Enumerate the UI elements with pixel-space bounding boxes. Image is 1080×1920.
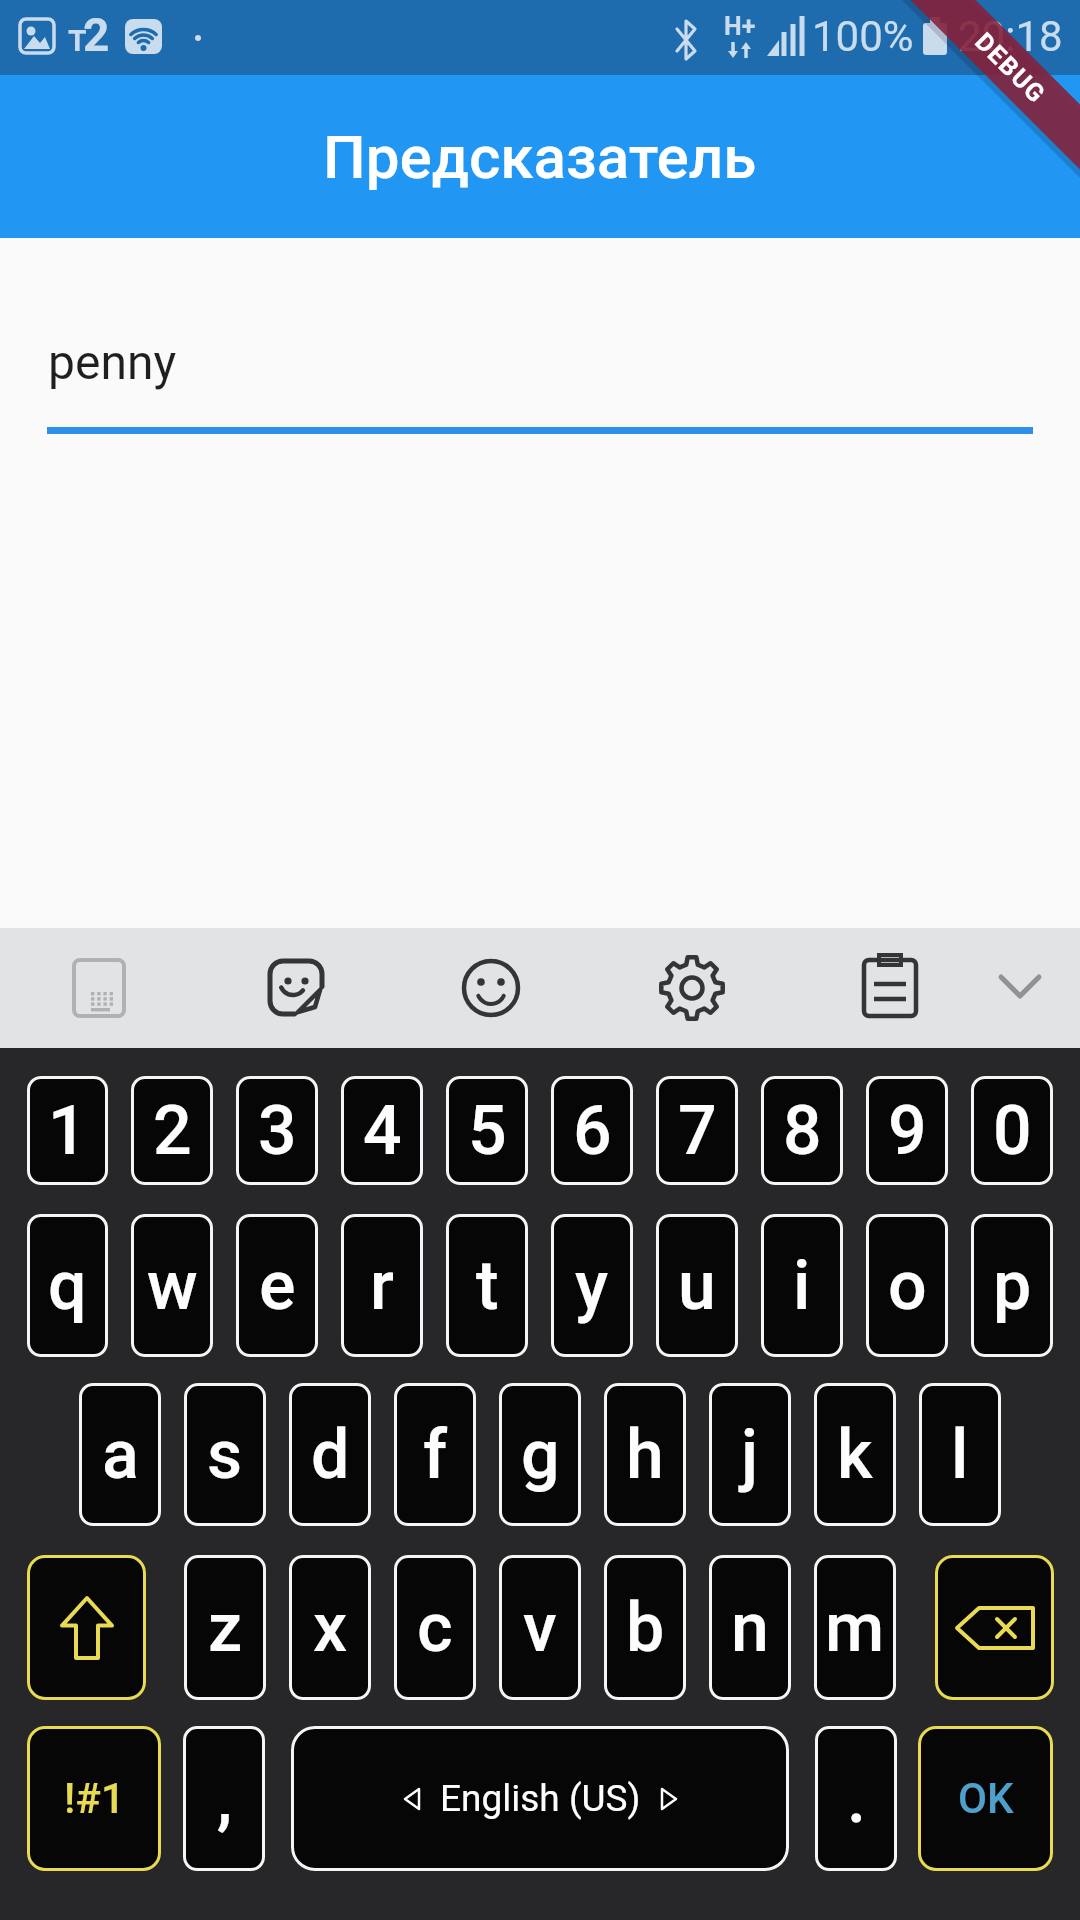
staticText: o — [888, 1246, 927, 1326]
staticText: 100% — [812, 12, 914, 61]
button[interactable]: q — [27, 1214, 108, 1357]
staticText: !#1 — [64, 1774, 125, 1823]
button[interactable]: s — [184, 1383, 266, 1526]
button[interactable]: w — [131, 1214, 213, 1357]
button[interactable]: z — [184, 1555, 266, 1700]
button[interactable]: i — [761, 1214, 843, 1357]
button[interactable]: !#1 — [27, 1726, 161, 1871]
button[interactable]: l — [919, 1383, 1001, 1526]
staticText: H+ — [724, 12, 756, 41]
staticText: 4 — [363, 1091, 402, 1171]
staticText: t — [476, 1246, 499, 1326]
staticText: e — [259, 1246, 296, 1326]
button[interactable]: 8 — [761, 1076, 843, 1185]
button[interactable]: v — [499, 1555, 581, 1700]
staticText: 2 — [153, 1091, 192, 1171]
staticText: b — [626, 1588, 665, 1668]
staticText: 2 — [83, 8, 110, 62]
staticText: c — [417, 1588, 453, 1668]
button[interactable]: , — [183, 1726, 265, 1871]
staticText: z — [208, 1588, 243, 1668]
staticText: k — [837, 1415, 873, 1495]
staticText: a — [102, 1415, 139, 1495]
staticText: j — [741, 1415, 759, 1495]
button[interactable]: a — [79, 1383, 161, 1526]
staticText: OK — [958, 1774, 1014, 1823]
button[interactable]: t — [446, 1214, 528, 1357]
staticText: . — [847, 1759, 866, 1839]
button[interactable]: h — [604, 1383, 686, 1526]
staticText: 1 — [48, 1091, 87, 1171]
staticText: penny — [48, 334, 177, 390]
staticText: 7 — [678, 1091, 717, 1171]
button[interactable]: 1 — [27, 1076, 108, 1185]
button[interactable]: 2 — [131, 1076, 213, 1185]
button[interactable]: 4 — [341, 1076, 423, 1185]
staticText: h — [626, 1415, 664, 1495]
button[interactable]: j — [709, 1383, 791, 1526]
button[interactable]: n — [709, 1555, 791, 1700]
staticText: 20:18 — [958, 12, 1063, 61]
staticText: v — [523, 1588, 557, 1668]
button[interactable]: 0 — [971, 1076, 1053, 1185]
button[interactable]: c — [394, 1555, 476, 1700]
button[interactable] — [935, 1555, 1054, 1700]
button[interactable]: 6 — [551, 1076, 633, 1185]
button[interactable]: y — [551, 1214, 633, 1357]
staticText: 6 — [573, 1091, 612, 1171]
button[interactable]: g — [499, 1383, 581, 1526]
button[interactable]: m — [814, 1555, 896, 1700]
button[interactable]: r — [341, 1214, 423, 1357]
button[interactable]: u — [656, 1214, 738, 1357]
staticText: l — [951, 1415, 969, 1495]
staticText: x — [313, 1588, 348, 1668]
button[interactable]: . — [815, 1726, 897, 1871]
button[interactable]: 7 — [656, 1076, 738, 1185]
staticText: Предсказатель — [323, 122, 757, 192]
staticText: q — [48, 1246, 87, 1326]
staticText: n — [731, 1588, 769, 1668]
button[interactable]: 9 — [866, 1076, 948, 1185]
staticText: i — [793, 1246, 811, 1326]
staticText: 0 — [993, 1091, 1032, 1171]
staticText: d — [311, 1415, 350, 1495]
staticText: 5 — [468, 1091, 507, 1171]
button[interactable]: 5 — [446, 1076, 528, 1185]
staticText: g — [521, 1415, 560, 1495]
button[interactable]: OK — [918, 1726, 1053, 1871]
button[interactable]: d — [289, 1383, 371, 1526]
staticText: u — [678, 1246, 716, 1326]
button[interactable]: f — [394, 1383, 476, 1526]
staticText: 3 — [258, 1091, 297, 1171]
staticText: 8 — [783, 1091, 822, 1171]
staticText: w — [147, 1246, 198, 1326]
staticText: T — [68, 23, 87, 58]
staticText: , — [217, 1759, 232, 1839]
button[interactable]: e — [236, 1214, 318, 1357]
button[interactable]: p — [971, 1214, 1053, 1357]
staticText: m — [825, 1588, 885, 1668]
staticText: r — [370, 1246, 394, 1326]
button[interactable]: x — [289, 1555, 371, 1700]
button[interactable] — [27, 1555, 146, 1700]
staticText: p — [993, 1246, 1032, 1326]
staticText: y — [575, 1246, 609, 1326]
staticText: s — [207, 1415, 243, 1495]
staticText: English (US) — [440, 1777, 641, 1820]
button[interactable]: k — [814, 1383, 896, 1526]
button[interactable]: 3 — [236, 1076, 318, 1185]
button[interactable]: o — [866, 1214, 948, 1357]
staticText: 9 — [888, 1091, 927, 1171]
button[interactable]: English (US) — [291, 1726, 789, 1871]
staticText: DEBUG — [969, 27, 1052, 110]
button[interactable]: b — [604, 1555, 686, 1700]
staticText: f — [423, 1415, 448, 1495]
